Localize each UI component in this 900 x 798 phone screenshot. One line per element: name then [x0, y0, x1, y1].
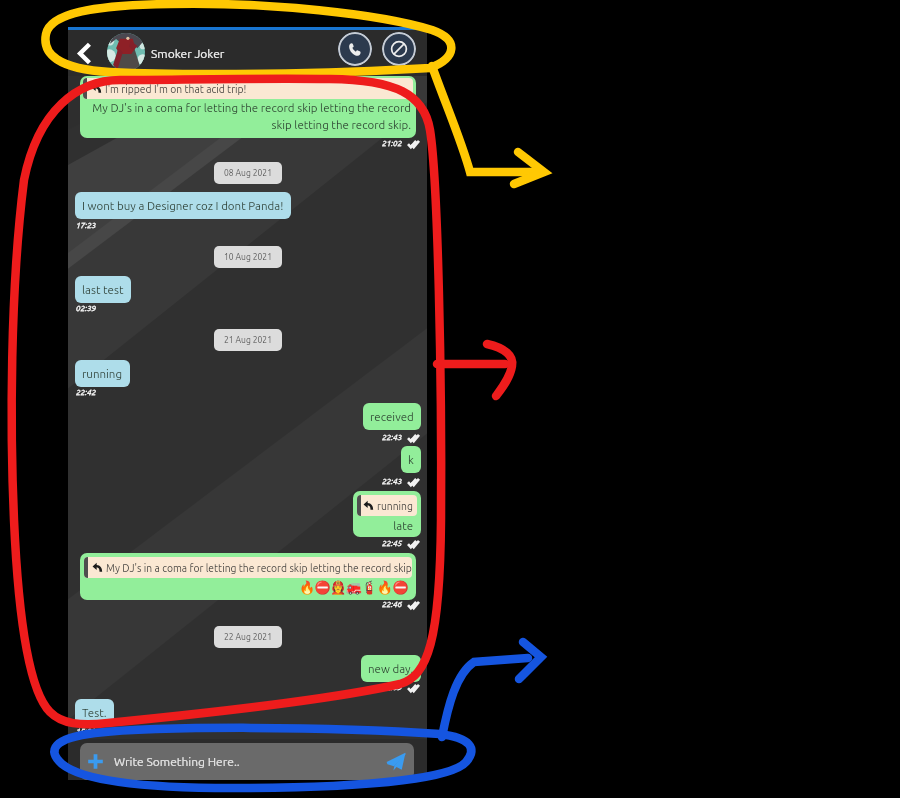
staticText: 08 Aug 2021 — [224, 168, 272, 178]
staticText: 22:45 — [382, 539, 403, 548]
staticText: received — [370, 410, 414, 423]
other: Send — [383, 749, 409, 775]
button[interactable]: 22 Aug 2021 — [214, 626, 282, 648]
button[interactable]: running — [353, 491, 421, 537]
button[interactable]: I'm ripped I'm on that acid trip! — [80, 76, 416, 138]
button[interactable]: Attach — [80, 743, 414, 780]
staticText: running — [377, 500, 413, 512]
button[interactable]: I wont buy a Designer coz I dont Panda! — [75, 192, 291, 219]
staticText: Smoker Joker — [151, 47, 225, 60]
staticText: 17:23 — [76, 221, 97, 230]
staticText: last test — [82, 283, 124, 296]
button[interactable]: new day. — [361, 655, 421, 682]
staticText: My DJ's in a coma for letting the record… — [85, 101, 411, 131]
button[interactable]: 10 Aug 2021 — [214, 246, 282, 268]
staticText: 22 Aug 2021 — [224, 632, 272, 642]
button[interactable]: k — [401, 446, 421, 473]
staticText: My DJ's in a coma for letting the record… — [106, 562, 412, 574]
staticText: 10 Aug 2021 — [224, 252, 272, 262]
staticText: k — [408, 453, 414, 466]
staticText: I'm ripped I'm on that acid trip! — [105, 83, 247, 95]
staticText: Write Something Here.. — [114, 755, 240, 768]
other: Attach — [87, 753, 104, 770]
staticText: I wont buy a Designer coz I dont Panda! — [82, 199, 284, 212]
staticText: 22:42 — [76, 388, 97, 397]
button[interactable]: received — [363, 403, 421, 430]
button[interactable]: last test — [75, 276, 131, 303]
staticText: 21:02 — [382, 139, 403, 148]
staticText: new day. — [368, 662, 414, 675]
button[interactable]: 08 Aug 2021 — [214, 162, 282, 184]
button[interactable]: Block — [382, 32, 416, 66]
staticText: 🔥⛔👩‍🚒🚒🧯🔥⛔ — [88, 580, 408, 595]
staticText: 22:46 — [382, 600, 403, 609]
button[interactable]: My DJ's in a coma for letting the record… — [80, 553, 416, 600]
staticText: Test. — [82, 706, 107, 719]
staticText: 02:39 — [382, 683, 403, 692]
staticText: running — [82, 367, 123, 380]
staticText: late — [361, 519, 413, 532]
staticText: 15:03 — [76, 727, 97, 736]
button[interactable]: 21 Aug 2021 — [214, 329, 282, 351]
button[interactable]: Test. — [75, 699, 114, 726]
button[interactable]: running — [75, 360, 130, 387]
staticText: 22:43 — [382, 477, 403, 486]
staticText: 21 Aug 2021 — [224, 335, 272, 345]
button[interactable]: Call — [338, 32, 372, 66]
staticText: 22:43 — [382, 433, 403, 442]
staticText: 02:39 — [76, 304, 97, 313]
button[interactable]: Back — [73, 36, 96, 70]
